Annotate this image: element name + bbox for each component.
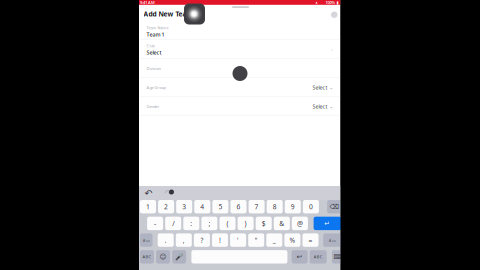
staticText: ☺ <box>160 253 167 261</box>
staticText: $ <box>262 219 266 228</box>
staticText: ↷ <box>164 188 172 198</box>
staticText: ⌨ <box>333 253 343 261</box>
staticText: 8 <box>273 202 277 211</box>
staticText: ▲ <box>315 1 317 4</box>
button[interactable]: 6 <box>230 200 246 213</box>
staticText: ? <box>200 236 203 245</box>
staticText: & <box>279 219 284 228</box>
staticText: % <box>289 236 295 245</box>
staticText: Team 1 <box>146 31 164 38</box>
button[interactable]: ( <box>219 217 235 230</box>
button[interactable]: #+= <box>323 233 341 247</box>
button[interactable]: ' <box>230 233 246 247</box>
staticText: › <box>331 46 333 53</box>
button[interactable]: 5 <box>212 200 228 213</box>
button[interactable]: Return <box>314 217 341 230</box>
staticText: ↶ <box>144 188 152 198</box>
button[interactable]: 4 <box>194 200 210 213</box>
button[interactable]: 9 <box>285 200 301 213</box>
staticText: / <box>172 219 174 228</box>
button[interactable]: Undo <box>292 250 308 263</box>
button[interactable]: Gender <box>139 97 340 116</box>
staticText: ⌫ <box>330 203 339 210</box>
button[interactable]: . <box>158 233 174 247</box>
staticText: ) <box>245 219 247 228</box>
staticText: 0 <box>309 202 313 211</box>
button[interactable]: ) <box>238 217 254 230</box>
button[interactable]: " <box>248 233 264 247</box>
staticText: ! <box>219 236 221 245</box>
button[interactable]: - <box>147 217 163 230</box>
staticText: Gender <box>146 104 159 109</box>
staticText: 3 <box>182 202 186 211</box>
staticText: = <box>308 236 312 245</box>
staticText: 4 <box>200 202 204 211</box>
button[interactable]: Division <box>139 59 340 78</box>
button[interactable]: ! <box>212 233 228 247</box>
staticText: Select <box>312 84 327 91</box>
staticText: 100% ▮ <box>325 0 338 5</box>
staticText: #+= <box>329 237 336 243</box>
button[interactable]: Profile <box>331 11 337 18</box>
button[interactable]: Team Name <box>139 23 340 40</box>
staticText: ⌄ <box>329 103 333 110</box>
staticText: - <box>154 219 156 228</box>
button[interactable]: Emoji <box>156 250 170 263</box>
button[interactable]: Club <box>139 40 340 59</box>
button[interactable]: 7 <box>249 200 265 213</box>
staticText: Add New Team <box>143 9 193 18</box>
button[interactable]: Delete <box>327 200 341 213</box>
staticText: . <box>165 236 167 245</box>
button[interactable]: / <box>165 217 181 230</box>
button[interactable]: Dictate <box>172 250 186 263</box>
button[interactable]: 2 <box>158 200 174 213</box>
staticText: ⌄ <box>329 84 333 91</box>
button[interactable]: #+= <box>140 233 152 247</box>
staticText: ↩ <box>297 253 303 261</box>
button[interactable]: : <box>183 217 199 230</box>
staticText: 5 <box>218 202 222 211</box>
staticText: ↵ <box>324 220 330 227</box>
staticText: _ <box>273 236 276 245</box>
button[interactable]: ? <box>194 233 210 247</box>
staticText: Select <box>312 103 327 110</box>
button[interactable]: _ <box>266 233 282 247</box>
staticText: Team Name <box>146 25 168 30</box>
button[interactable]: Undo <box>143 188 154 198</box>
staticText: : <box>190 219 192 228</box>
button[interactable]: ; <box>201 217 217 230</box>
button[interactable]: Space <box>191 250 287 263</box>
button[interactable]: ABC <box>310 250 327 263</box>
staticText: ; <box>208 219 210 228</box>
staticText: 1 <box>146 202 150 211</box>
staticText: ABC <box>314 254 323 259</box>
button[interactable]: $ <box>256 217 272 230</box>
staticText: Age Group <box>146 85 165 90</box>
button[interactable]: 1 <box>140 200 156 213</box>
staticText: Select <box>146 49 161 56</box>
staticText: " <box>255 236 258 245</box>
button[interactable]: 0 <box>303 200 319 213</box>
staticText: 🎤 <box>175 253 183 261</box>
staticText: 7 <box>255 202 259 211</box>
button[interactable]: 3 <box>176 200 192 213</box>
button[interactable]: % <box>284 233 300 247</box>
button[interactable]: @ <box>292 217 308 230</box>
button[interactable]: 8 <box>267 200 283 213</box>
staticText: 9:41 AM <box>140 0 155 5</box>
staticText: #+= <box>143 237 150 243</box>
staticText: 2 <box>164 202 168 211</box>
staticText: Division <box>146 66 160 71</box>
staticText: 9 <box>291 202 295 211</box>
staticText: @ <box>297 219 303 228</box>
button[interactable]: = <box>302 233 318 247</box>
button[interactable]: & <box>274 217 290 230</box>
button[interactable]: Age Group <box>139 78 340 97</box>
button[interactable]: Redo <box>163 188 174 198</box>
staticText: 6 <box>236 202 240 211</box>
staticText: ( <box>226 219 228 228</box>
button[interactable]: ABC <box>140 250 154 263</box>
button[interactable]: Hide keyboard <box>332 250 345 263</box>
button[interactable]: , <box>176 233 192 247</box>
